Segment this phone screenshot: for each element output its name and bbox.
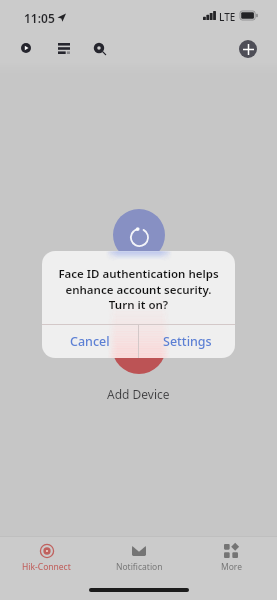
button[interactable]: More [185,538,277,578]
button[interactable]: Search [86,35,112,61]
staticText: Hik-Connect [22,561,71,573]
staticText: LTE [219,10,236,24]
staticText: Add Device [107,386,170,402]
button[interactable]: Cancel [42,325,138,358]
staticText: Face ID authentication helps enhance acc… [48,266,229,312]
button[interactable]: Add [239,40,257,58]
staticText: Cancel [70,333,110,350]
button[interactable]: Settings [139,325,235,358]
button[interactable]: Hik-Connect [0,538,93,578]
button[interactable]: Live view [13,35,39,61]
staticText: 11:05 [24,10,55,26]
button[interactable]: Device list [51,35,77,61]
button[interactable]: Notification [93,538,185,578]
staticText: Settings [163,333,212,350]
staticText: More [221,561,242,573]
staticText: Notification [116,561,163,573]
